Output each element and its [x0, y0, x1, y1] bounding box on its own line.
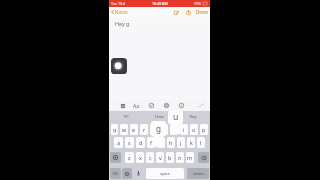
button[interactable]: Delete — [198, 152, 209, 163]
staticText: 10:40 AM — [152, 1, 168, 6]
staticText: v — [159, 154, 162, 161]
button[interactable]: “H” — [109, 111, 142, 122]
button[interactable]: r — [140, 124, 148, 135]
button[interactable]: Camera — [162, 101, 171, 110]
staticText: n — [178, 154, 182, 161]
button[interactable]: o — [190, 124, 198, 135]
button[interactable]: q — [111, 124, 118, 135]
staticText: 73% — [194, 1, 202, 6]
button[interactable]: Table — [118, 101, 127, 110]
button[interactable]: l — [197, 137, 205, 148]
button[interactable]: a — [114, 137, 123, 148]
button[interactable]: p — [200, 124, 208, 135]
button[interactable]: New note — [173, 9, 180, 16]
staticText: g — [156, 123, 162, 134]
staticText: s — [128, 139, 131, 146]
staticText: q — [113, 126, 117, 133]
staticText: Notes — [115, 9, 128, 15]
staticText: Aa — [133, 102, 140, 109]
button[interactable]: Dictate — [134, 168, 143, 179]
button[interactable]: s — [125, 137, 134, 148]
button[interactable]: k — [187, 137, 195, 148]
staticText: o — [192, 126, 196, 133]
staticText: c — [149, 154, 152, 161]
staticText: “H” — [123, 114, 129, 119]
button[interactable]: 123 — [110, 168, 121, 179]
staticText: Tue 10:4 — [111, 1, 126, 6]
staticText: m — [187, 154, 193, 161]
button[interactable]: f — [147, 137, 155, 148]
button[interactable]: Done — [195, 8, 209, 16]
button[interactable]: return — [187, 168, 209, 179]
button[interactable]: Hide keyboard — [197, 101, 206, 110]
staticText: b — [168, 154, 172, 161]
staticText: a — [117, 139, 121, 146]
button[interactable]: i — [180, 124, 188, 135]
staticText: j — [180, 139, 182, 146]
button[interactable]: Checklist — [147, 101, 156, 110]
staticText: d — [139, 139, 143, 146]
staticText: h — [169, 139, 173, 146]
button[interactable]: e — [130, 124, 138, 135]
button[interactable]: Notes — [109, 9, 130, 15]
button[interactable]: How — [142, 111, 176, 122]
button[interactable]: n — [176, 152, 184, 163]
staticText: 123 — [112, 171, 119, 176]
staticText: z — [128, 154, 131, 161]
button[interactable]: Shift — [110, 152, 121, 163]
button[interactable]: z — [125, 152, 134, 163]
staticText: u — [173, 111, 179, 123]
button[interactable]: g — [157, 137, 165, 148]
button[interactable]: w — [120, 124, 128, 135]
staticText: i — [183, 126, 185, 133]
button[interactable]: m — [186, 152, 194, 163]
button[interactable]: u — [170, 124, 178, 135]
button[interactable]: Emoji — [122, 168, 132, 179]
staticText: e — [132, 126, 136, 133]
button[interactable]: h — [167, 137, 175, 148]
button[interactable]: b — [166, 152, 174, 163]
staticText: k — [190, 139, 193, 146]
button[interactable]: t — [150, 124, 158, 135]
button[interactable]: d — [136, 137, 145, 148]
button[interactable]: c — [146, 152, 154, 163]
button[interactable]: j — [177, 137, 185, 148]
staticText: f — [150, 139, 152, 146]
staticText: space — [160, 171, 170, 176]
staticText: x — [139, 154, 142, 161]
staticText: Hey g — [115, 20, 130, 27]
button[interactable]: Attached photo — [111, 58, 127, 74]
staticText: return — [193, 171, 204, 176]
staticText: Hey — [189, 114, 197, 119]
button[interactable]: Aa — [132, 101, 141, 110]
staticText: r — [143, 126, 146, 133]
button[interactable]: y — [160, 124, 168, 135]
button[interactable]: Share — [185, 9, 192, 16]
staticText: l — [200, 139, 202, 146]
staticText: How — [155, 114, 164, 119]
button[interactable]: v — [156, 152, 164, 163]
button[interactable]: Markup — [177, 101, 186, 110]
button[interactable]: x — [136, 152, 144, 163]
staticText: p — [202, 126, 206, 133]
staticText: Done — [196, 9, 208, 15]
button[interactable]: space — [146, 168, 184, 179]
staticText: w — [122, 126, 127, 133]
button[interactable]: Hey — [176, 111, 210, 122]
